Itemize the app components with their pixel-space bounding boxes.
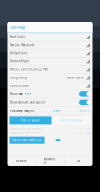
staticText: Settings	[10, 25, 25, 30]
staticText: Time in above	[21, 119, 40, 122]
button[interactable]: Time in above	[9, 116, 51, 124]
button[interactable]: Show map	[7, 90, 92, 98]
staticText: Timestamp margins	[10, 109, 34, 113]
button[interactable]: Time in below	[52, 116, 90, 124]
staticText: Show map	[10, 92, 23, 96]
button[interactable]: Import watermark logo	[9, 137, 44, 144]
staticText: Hong Kong	[10, 76, 27, 79]
staticText: OK	[76, 159, 80, 163]
staticText: ×	[82, 126, 84, 130]
staticText: Load	[86, 132, 90, 135]
staticText: None (GPS)	[67, 76, 83, 79]
button[interactable]: OK	[64, 156, 92, 166]
button[interactable]: Timestamp margins	[7, 107, 92, 115]
button[interactable]: Restore	[7, 156, 35, 166]
staticText: Time in below	[61, 119, 81, 122]
staticText: Show altitude and speed	[10, 101, 45, 104]
staticText: 3264 x 2448	[10, 84, 29, 87]
staticText: Import watermark logo	[12, 138, 42, 142]
button[interactable]: Hong Kong	[7, 74, 92, 82]
button[interactable]: Text size (Medium)	[7, 41, 92, 49]
staticText: Bottom Right	[10, 59, 29, 63]
button[interactable]: Font Color	[7, 33, 92, 41]
staticText: None >	[79, 109, 90, 113]
button[interactable]: Default font	[7, 49, 92, 57]
staticText: Advanced	[44, 157, 56, 165]
button[interactable]: HH:33, 2019-4:30:22 PM	[7, 66, 92, 74]
staticText: Size	[86, 127, 90, 130]
staticText: Display custom text on sample	[10, 127, 42, 130]
staticText: HH:33, 2019-4:30:22 PM	[10, 68, 47, 71]
staticText: Support multi-line and emoji	[10, 131, 40, 134]
button[interactable]: Show altitude and speed	[7, 98, 92, 107]
staticText: Default font	[10, 51, 27, 55]
staticText: Font Color	[10, 35, 25, 39]
staticText: Text size (Medium)	[10, 43, 34, 47]
button[interactable]: Bottom Right	[7, 57, 92, 66]
button[interactable]: 3264 x 2448	[7, 82, 92, 90]
staticText: Restore	[16, 159, 27, 163]
button[interactable]: Advanced	[36, 156, 64, 166]
